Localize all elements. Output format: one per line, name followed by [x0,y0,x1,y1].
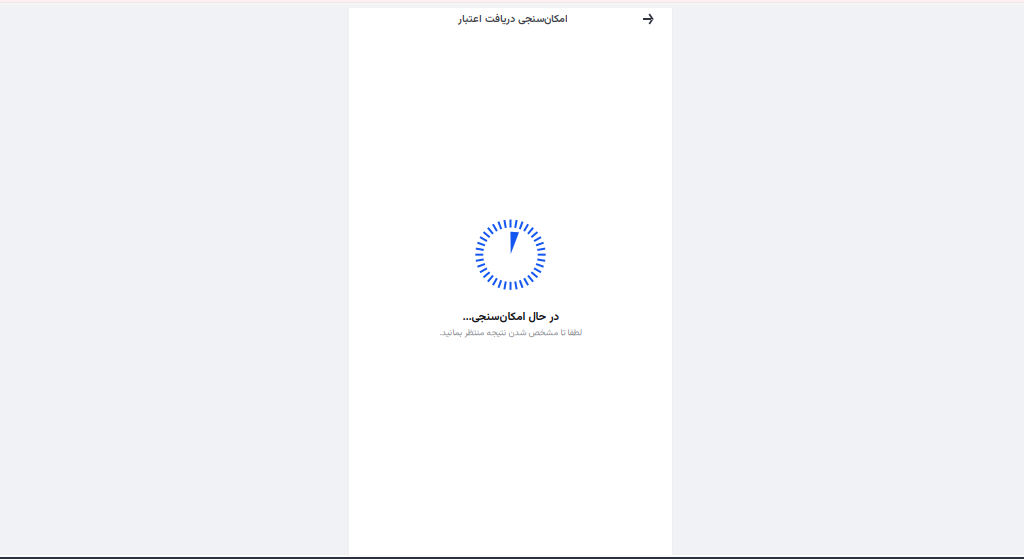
staticText: در حال امکان‌سنجی... [462,308,559,326]
staticText: لطفا تا مشخص شدن نتیجه منتظر بمانید. [439,326,582,340]
button[interactable]: Back [633,4,663,34]
staticText: امکان‌سنجی دریافت اعتبار [457,11,567,28]
